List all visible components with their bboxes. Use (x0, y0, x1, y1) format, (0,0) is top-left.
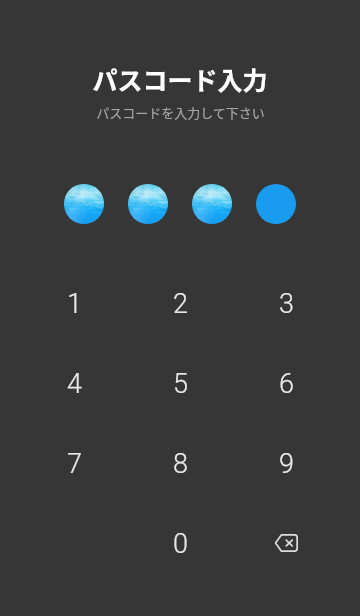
staticText: 6 (279, 368, 294, 400)
staticText: 0 (173, 528, 188, 560)
staticText: 1 (67, 288, 82, 320)
button[interactable]: Delete (233, 504, 339, 584)
button[interactable]: 7 (21, 424, 127, 504)
button[interactable]: 4 (21, 344, 127, 424)
staticText: 8 (173, 448, 188, 480)
button[interactable]: 5 (127, 344, 233, 424)
button[interactable]: 6 (233, 344, 339, 424)
staticText: 5 (173, 368, 188, 400)
other: Delete (264, 521, 308, 565)
button[interactable]: 1 (21, 264, 127, 344)
staticText: 2 (173, 288, 188, 320)
staticText: パスコード入力 (92, 61, 268, 97)
staticText: 7 (67, 448, 82, 480)
staticText: パスコードを入力して下さい (96, 103, 265, 122)
button[interactable]: 9 (233, 424, 339, 504)
button[interactable]: 2 (127, 264, 233, 344)
button[interactable]: 8 (127, 424, 233, 504)
staticText: 9 (279, 448, 294, 480)
staticText: 3 (279, 288, 294, 320)
staticText: 4 (67, 368, 82, 400)
button[interactable]: 0 (127, 504, 233, 584)
button[interactable]: 3 (233, 264, 339, 344)
